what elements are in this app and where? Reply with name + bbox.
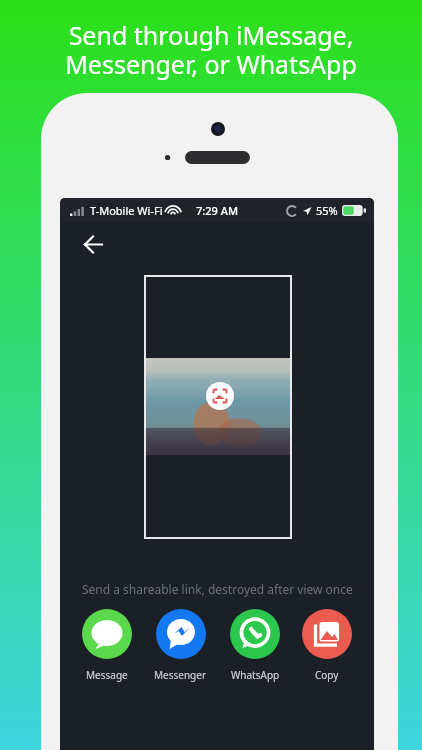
staticText: 55% bbox=[316, 203, 338, 218]
button[interactable]: Scan bbox=[206, 382, 234, 410]
staticText: Copy bbox=[315, 668, 339, 682]
staticText: Message bbox=[86, 668, 128, 682]
button[interactable]: Message bbox=[82, 609, 132, 682]
button[interactable]: Messenger bbox=[154, 609, 207, 682]
button[interactable]: WhatsApp bbox=[230, 609, 280, 682]
button[interactable]: Back bbox=[78, 229, 109, 260]
staticText: T-Mobile Wi-Fi bbox=[90, 203, 163, 218]
staticText: Send through iMessage, Messenger, or Wha… bbox=[65, 18, 357, 81]
staticText: WhatsApp bbox=[231, 668, 280, 682]
staticText: 7:29 AM bbox=[196, 203, 239, 218]
button[interactable]: Copy bbox=[302, 609, 352, 682]
staticText: Messenger bbox=[154, 668, 207, 682]
staticText: Send a shareable link, destroyed after v… bbox=[82, 581, 353, 597]
